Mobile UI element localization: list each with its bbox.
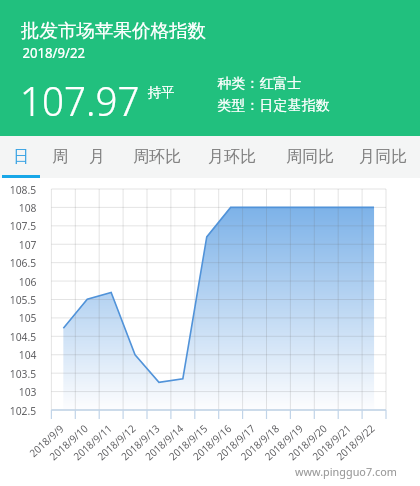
button[interactable]: 周 [45, 136, 75, 178]
button[interactable]: 月同比 [357, 136, 409, 178]
button[interactable]: 周同比 [284, 136, 336, 178]
button[interactable]: 月 [82, 136, 112, 178]
staticText: 周同比 [286, 147, 334, 167]
staticText: 周环比 [133, 147, 181, 167]
staticText: 周 [52, 147, 68, 167]
button[interactable]: 日 [6, 136, 36, 178]
staticText: 日 [13, 147, 29, 167]
staticText: 月 [89, 147, 105, 167]
staticText: 月同比 [359, 147, 407, 167]
staticText: 月环比 [208, 147, 256, 167]
button[interactable]: 月环比 [206, 136, 258, 178]
button[interactable]: 周环比 [131, 136, 183, 178]
